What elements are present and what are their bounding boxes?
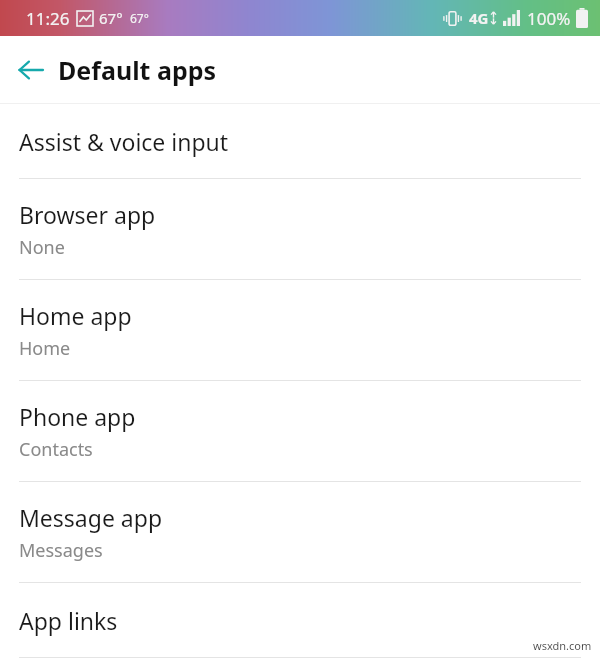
staticText: 67° <box>130 10 149 26</box>
staticText: 11:26 <box>26 7 70 30</box>
button[interactable]: Phone app <box>0 381 600 481</box>
staticText: None <box>19 235 65 260</box>
staticText: Default apps <box>58 53 217 87</box>
button[interactable]: Home app <box>0 280 600 380</box>
button[interactable]: Browser app <box>0 179 600 279</box>
button[interactable]: App links <box>0 583 600 657</box>
staticText: wsxdn.com <box>533 638 592 653</box>
button[interactable]: Assist & voice input <box>0 104 600 178</box>
staticText: App links <box>19 605 118 636</box>
staticText: Phone app <box>19 401 136 432</box>
staticText: Home <box>19 336 71 361</box>
staticText: 67° <box>99 8 123 28</box>
staticText: Home app <box>19 300 132 331</box>
staticText: Messages <box>19 538 103 563</box>
staticText: Browser app <box>19 199 156 230</box>
staticText: Assist & voice input <box>19 126 229 157</box>
staticText: Contacts <box>19 437 93 462</box>
staticText: 100% <box>527 7 571 30</box>
staticText: 4G <box>469 8 489 28</box>
staticText: Message app <box>19 502 163 533</box>
button[interactable]: Message app <box>0 482 600 582</box>
button[interactable]: Back <box>10 49 52 91</box>
